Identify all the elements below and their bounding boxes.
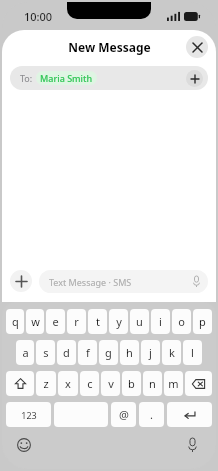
button[interactable]: t [88,309,107,334]
staticText: s [43,345,49,360]
staticText: r [74,314,79,329]
staticText: b [128,376,135,391]
staticText: m [168,376,179,391]
staticText: y [116,314,122,329]
staticText: x [65,376,71,391]
staticText: f [86,345,90,360]
staticText: i [159,314,162,329]
staticText: 10:00 [24,9,53,24]
staticText: Text Message · SMS [49,276,132,288]
button[interactable]: Backspace [185,371,212,396]
staticText: j [149,345,152,360]
button[interactable]: Return [167,402,212,427]
button[interactable]: Text Message · SMS [39,270,208,293]
button[interactable]: v [101,371,120,396]
button[interactable]: q [6,309,24,334]
staticText: v [108,376,114,391]
staticText: c [87,376,93,391]
button[interactable]: f [78,340,97,365]
button[interactable]: 123 [6,402,51,427]
button[interactable]: r [67,309,86,334]
button[interactable]: x [58,371,78,396]
staticText: h [126,345,133,360]
button[interactable]: m [164,371,183,396]
button[interactable]: w [26,309,44,334]
button[interactable]: Close [186,36,208,58]
button[interactable]: To: [10,66,208,90]
button[interactable]: h [120,340,139,365]
staticText: k [169,345,175,360]
staticText: q [12,314,19,329]
button[interactable]: . [139,402,164,427]
button[interactable]: Shift [6,371,34,396]
staticText: w [31,314,40,329]
button[interactable]: s [36,340,55,365]
button[interactable]: Add attachment [10,270,32,292]
button[interactable]: b [122,371,141,396]
staticText: To: [20,72,33,84]
staticText: p [199,314,206,329]
staticText: d [63,345,70,360]
staticText: t [96,314,100,329]
staticText: 123 [21,409,37,421]
button[interactable]: y [109,309,128,334]
staticText: . [150,407,153,422]
button[interactable]: Dictate [184,437,200,453]
button[interactable]: l [183,340,202,365]
button[interactable]: g [99,340,118,365]
button[interactable]: u [130,309,149,334]
button[interactable]: j [141,340,160,365]
button[interactable]: n [143,371,162,396]
staticText: g [105,345,112,360]
button[interactable]: k [162,340,181,365]
button[interactable]: z [36,371,56,396]
staticText: e [52,314,59,329]
staticText: u [136,314,143,329]
staticText: n [149,376,156,391]
staticText: Maria Smith [40,72,93,84]
button[interactable]: c [80,371,99,396]
button[interactable]: p [193,309,212,334]
button[interactable]: Emoji [16,437,32,453]
staticText: l [191,345,194,360]
button[interactable]: Add contact [186,70,203,87]
staticText: z [43,376,49,391]
button[interactable]: o [172,309,191,334]
button[interactable]: d [57,340,76,365]
button[interactable]: a [16,340,34,365]
staticText: o [178,314,185,329]
staticText: a [22,345,29,360]
button[interactable]: Space [54,402,108,427]
button[interactable]: i [151,309,170,334]
button[interactable]: @ [111,402,136,427]
button[interactable]: e [46,309,65,334]
staticText: @ [119,407,129,422]
staticText: New Message [68,39,151,55]
